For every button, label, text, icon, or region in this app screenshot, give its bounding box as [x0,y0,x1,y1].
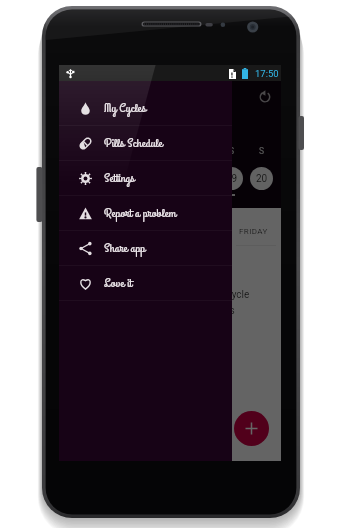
staticText: 19 [226,173,238,185]
staticText: Average cycle [188,289,250,301]
button[interactable]: S [250,146,273,196]
staticText: 17:50 [255,68,279,79]
staticText: 16 [134,173,146,185]
button[interactable]: Reset [254,86,276,108]
staticText: Report a problem [104,204,177,222]
staticText: 14 [73,173,85,185]
button[interactable]: Report a problem [59,196,232,230]
staticText: FRIDAY [239,227,268,236]
staticText: S [259,146,265,156]
staticText: S [229,146,235,156]
button[interactable]: Pills Schedule [59,126,232,160]
button[interactable]: My Cycles [59,91,232,125]
button[interactable]: S [220,146,243,196]
staticText: Settings [104,169,135,187]
button[interactable]: Love it [59,266,232,300]
staticText: 20 [256,173,268,185]
button[interactable]: W [128,146,151,196]
other: USB connected [66,69,75,78]
staticText: 28 days [200,305,235,317]
button[interactable]: Add entry [234,411,269,446]
staticText: W [136,146,144,156]
button[interactable]: T [97,146,120,196]
staticText: T [106,146,112,156]
staticText: Love it [104,274,132,292]
staticText: Pills Schedule [104,134,163,152]
staticText: My Cycles [104,99,146,117]
button[interactable]: Share app [59,231,232,265]
staticText: Share app [104,239,146,257]
button[interactable]: M [67,146,90,196]
staticText: M [75,146,83,156]
button[interactable]: Settings [59,161,232,195]
staticText: 15 [103,173,115,185]
button[interactable]: T [159,146,182,196]
